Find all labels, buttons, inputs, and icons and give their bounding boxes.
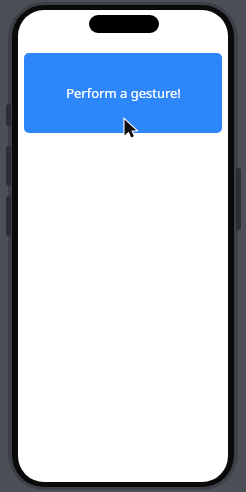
other: Pointer <box>124 119 140 141</box>
button[interactable]: Perform a gesture! <box>24 53 222 133</box>
staticText: Perform a gesture! <box>66 84 181 102</box>
